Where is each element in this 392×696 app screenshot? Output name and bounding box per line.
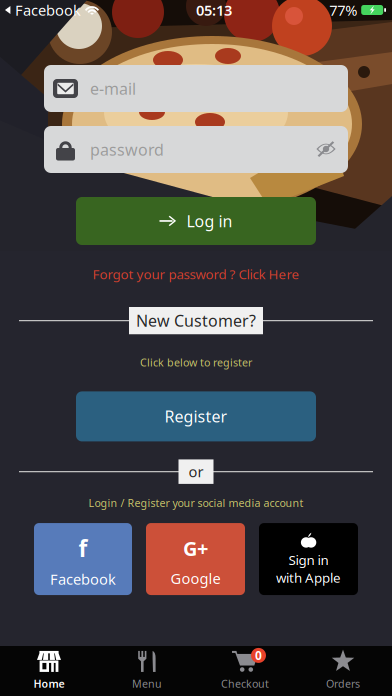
staticText: Forgot your password ? Click Here <box>92 265 299 283</box>
staticText: New Customer? <box>136 310 256 331</box>
staticText: Home <box>33 676 64 691</box>
button[interactable]: Register <box>76 391 316 441</box>
button[interactable]: Home <box>0 646 98 696</box>
staticText: G+ <box>183 535 208 562</box>
staticText: Sign in <box>288 551 328 569</box>
staticText: Menu <box>132 676 162 691</box>
staticText: Facebook <box>50 569 116 589</box>
staticText: Orders <box>326 676 360 691</box>
button[interactable]: Orders <box>294 646 392 696</box>
staticText: f <box>78 533 87 563</box>
staticText: Facebook <box>11 0 85 20</box>
button[interactable]: Menu <box>98 646 196 696</box>
button[interactable]: 0 <box>196 646 294 696</box>
staticText: 77% <box>329 0 361 20</box>
button[interactable]: Sign in <box>259 523 358 595</box>
staticText: 05:13 <box>196 0 232 20</box>
staticText: Register <box>164 406 227 427</box>
staticText: Log in <box>186 210 232 232</box>
button[interactable]: Forgot your password ? Click Here <box>92 267 299 281</box>
staticText: Login / Register your social media accou… <box>88 496 303 510</box>
button[interactable]: f <box>34 523 132 595</box>
staticText: Click below to register <box>140 355 252 369</box>
staticText: with Apple <box>276 569 341 586</box>
staticText: password <box>90 139 164 160</box>
staticText: 0 <box>255 647 262 663</box>
staticText: e-mail <box>90 78 136 99</box>
staticText: or <box>188 462 203 481</box>
button[interactable]: Log in <box>76 197 316 245</box>
staticText: Checkout <box>221 676 269 691</box>
staticText: Google <box>170 569 220 588</box>
button[interactable]: G+ <box>146 523 245 595</box>
